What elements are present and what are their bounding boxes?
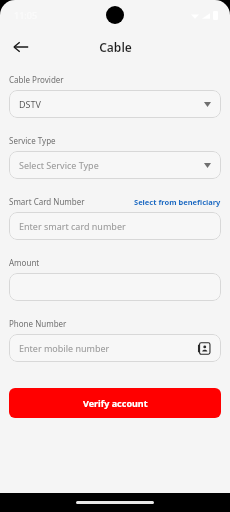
staticText: Verify account [83, 397, 148, 409]
button[interactable]: Select contact [197, 341, 211, 355]
staticText: Smart Card Number [9, 196, 85, 207]
button[interactable]: Verify account [9, 388, 221, 418]
button[interactable] [9, 273, 221, 301]
button[interactable]: DSTV [9, 90, 221, 118]
staticText: DSTV [19, 98, 41, 110]
staticText: Enter smart card number [19, 220, 126, 232]
button[interactable]: Back [6, 32, 36, 62]
staticText: Select Service Type [19, 159, 99, 171]
staticText: Cable Provider [9, 74, 64, 85]
staticText: Phone Number [9, 318, 67, 329]
staticText: Service Type [9, 135, 56, 146]
button[interactable]: Select Service Type [9, 151, 221, 179]
staticText: Select from beneficiary [134, 197, 221, 207]
staticText: Amount [9, 257, 40, 268]
button[interactable]: Select from beneficiary [134, 197, 221, 207]
button[interactable]: Enter mobile number [9, 334, 221, 362]
button[interactable]: Enter smart card number [9, 212, 221, 240]
staticText: Cable [99, 39, 132, 55]
staticText: Enter mobile number [19, 342, 110, 354]
